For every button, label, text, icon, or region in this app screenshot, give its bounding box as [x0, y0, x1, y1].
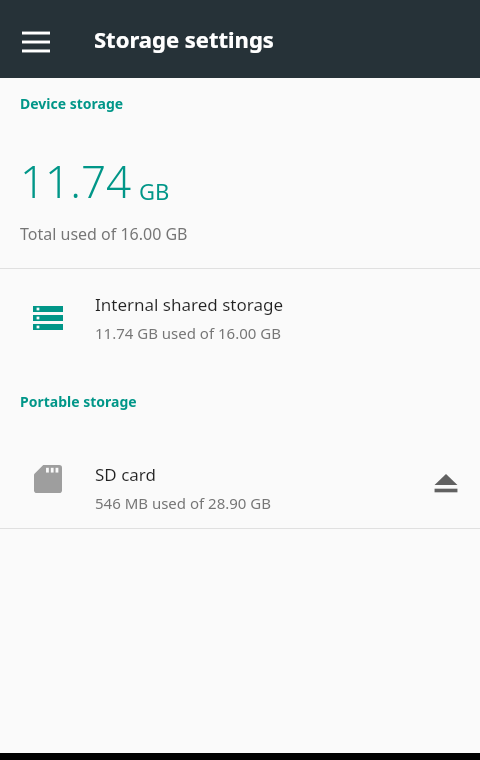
staticText: 11.74: [20, 151, 132, 211]
staticText: 11.74 GB used of 16.00 GB: [95, 323, 281, 343]
button[interactable]: SD card: [0, 438, 480, 528]
staticText: Total used of 16.00 GB: [20, 223, 188, 245]
staticText: Internal shared storage: [95, 293, 284, 316]
staticText: Storage settings: [94, 24, 274, 54]
staticText: Portable storage: [20, 392, 137, 411]
button[interactable]: Internal shared storage: [0, 269, 480, 359]
staticText: Device storage: [20, 94, 124, 113]
button[interactable]: Open navigation menu: [8, 11, 64, 67]
staticText: GB: [139, 176, 170, 206]
staticText: SD card: [95, 463, 156, 486]
button[interactable]: Eject SD card: [412, 438, 480, 520]
staticText: 546 MB used of 28.90 GB: [95, 493, 271, 513]
